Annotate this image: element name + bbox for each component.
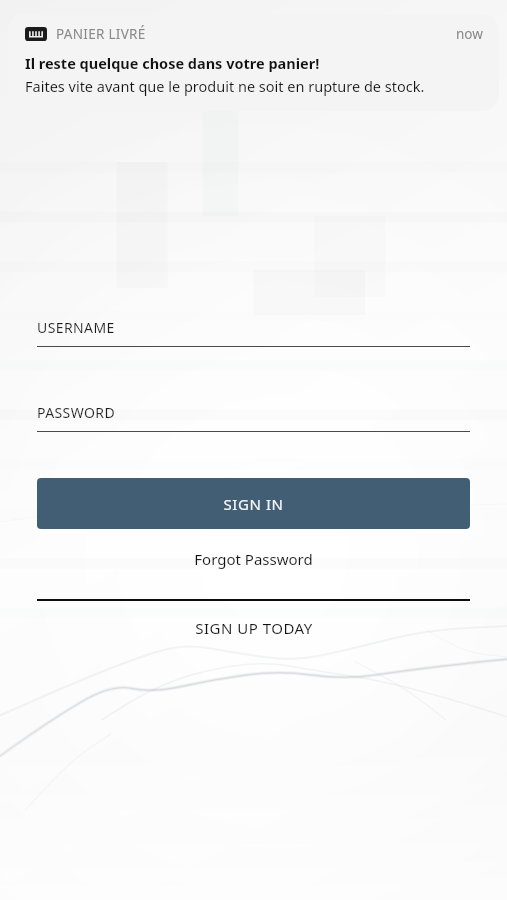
button[interactable]: SIGN IN xyxy=(37,478,470,529)
staticText: PANIER LIVRÉ xyxy=(56,25,146,43)
staticText: USERNAME xyxy=(37,318,115,337)
button[interactable]: PANIER LIVRÉ xyxy=(8,14,499,111)
staticText: Forgot Password xyxy=(194,549,313,569)
staticText: Faites vite avant que le produit ne soit… xyxy=(25,76,425,96)
button[interactable]: USERNAME xyxy=(37,318,470,347)
button[interactable]: PASSWORD xyxy=(37,403,470,432)
staticText: Il reste quelque chose dans votre panier… xyxy=(25,53,320,73)
button[interactable]: Forgot Password xyxy=(37,543,470,575)
staticText: PASSWORD xyxy=(37,403,116,422)
other: Notification: Panier livré xyxy=(8,14,499,111)
staticText: SIGN UP TODAY xyxy=(195,618,313,638)
staticText: now xyxy=(456,25,483,43)
button[interactable]: SIGN UP TODAY xyxy=(37,615,470,641)
staticText: SIGN IN xyxy=(223,494,284,514)
